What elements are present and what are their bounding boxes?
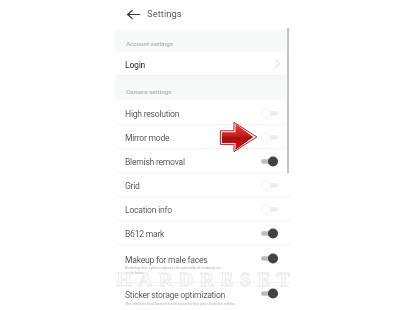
button[interactable]: Switch off [260, 108, 280, 119]
button[interactable]: High resolution [115, 101, 290, 125]
staticText: Enabling this option adjusts the intensi… [125, 265, 224, 275]
staticText: Account settings [126, 40, 173, 47]
staticText: Settings [147, 8, 182, 19]
button[interactable]: Switch on [260, 156, 280, 167]
button[interactable]: Back [126, 7, 141, 22]
staticText: The stickers that haven't been used for … [125, 301, 293, 306]
staticText: HARDRESET [99, 269, 314, 290]
button[interactable]: B612 mark [115, 221, 290, 245]
staticText: High resolution [125, 109, 180, 119]
staticText: Mirror mode [125, 133, 170, 143]
button[interactable]: Sticker storage optimization [115, 283, 290, 310]
staticText: Grid [125, 181, 140, 191]
button[interactable]: Switch off [260, 180, 280, 191]
button[interactable]: Switch off [260, 204, 280, 215]
staticText: Camera settings [126, 88, 172, 95]
staticText: Location info [125, 205, 172, 215]
button[interactable]: Switch on [260, 253, 280, 264]
staticText: B612 mark [125, 229, 165, 239]
button[interactable]: Mirror mode [115, 125, 290, 149]
button[interactable]: Switch on [260, 228, 280, 239]
staticText: Blemish removal [125, 157, 185, 167]
button[interactable]: Location info [115, 197, 290, 221]
staticText: Makeup for male faces [125, 255, 208, 265]
button[interactable]: Switch on [260, 288, 280, 299]
button[interactable]: Login [115, 52, 290, 76]
staticText: Sticker storage optimization [125, 290, 226, 300]
button[interactable]: Makeup for male faces [115, 245, 290, 283]
staticText: Login [125, 60, 146, 70]
button[interactable]: Grid [115, 173, 290, 197]
button[interactable]: Switch off [260, 132, 280, 143]
button[interactable]: Blemish removal [115, 149, 290, 173]
